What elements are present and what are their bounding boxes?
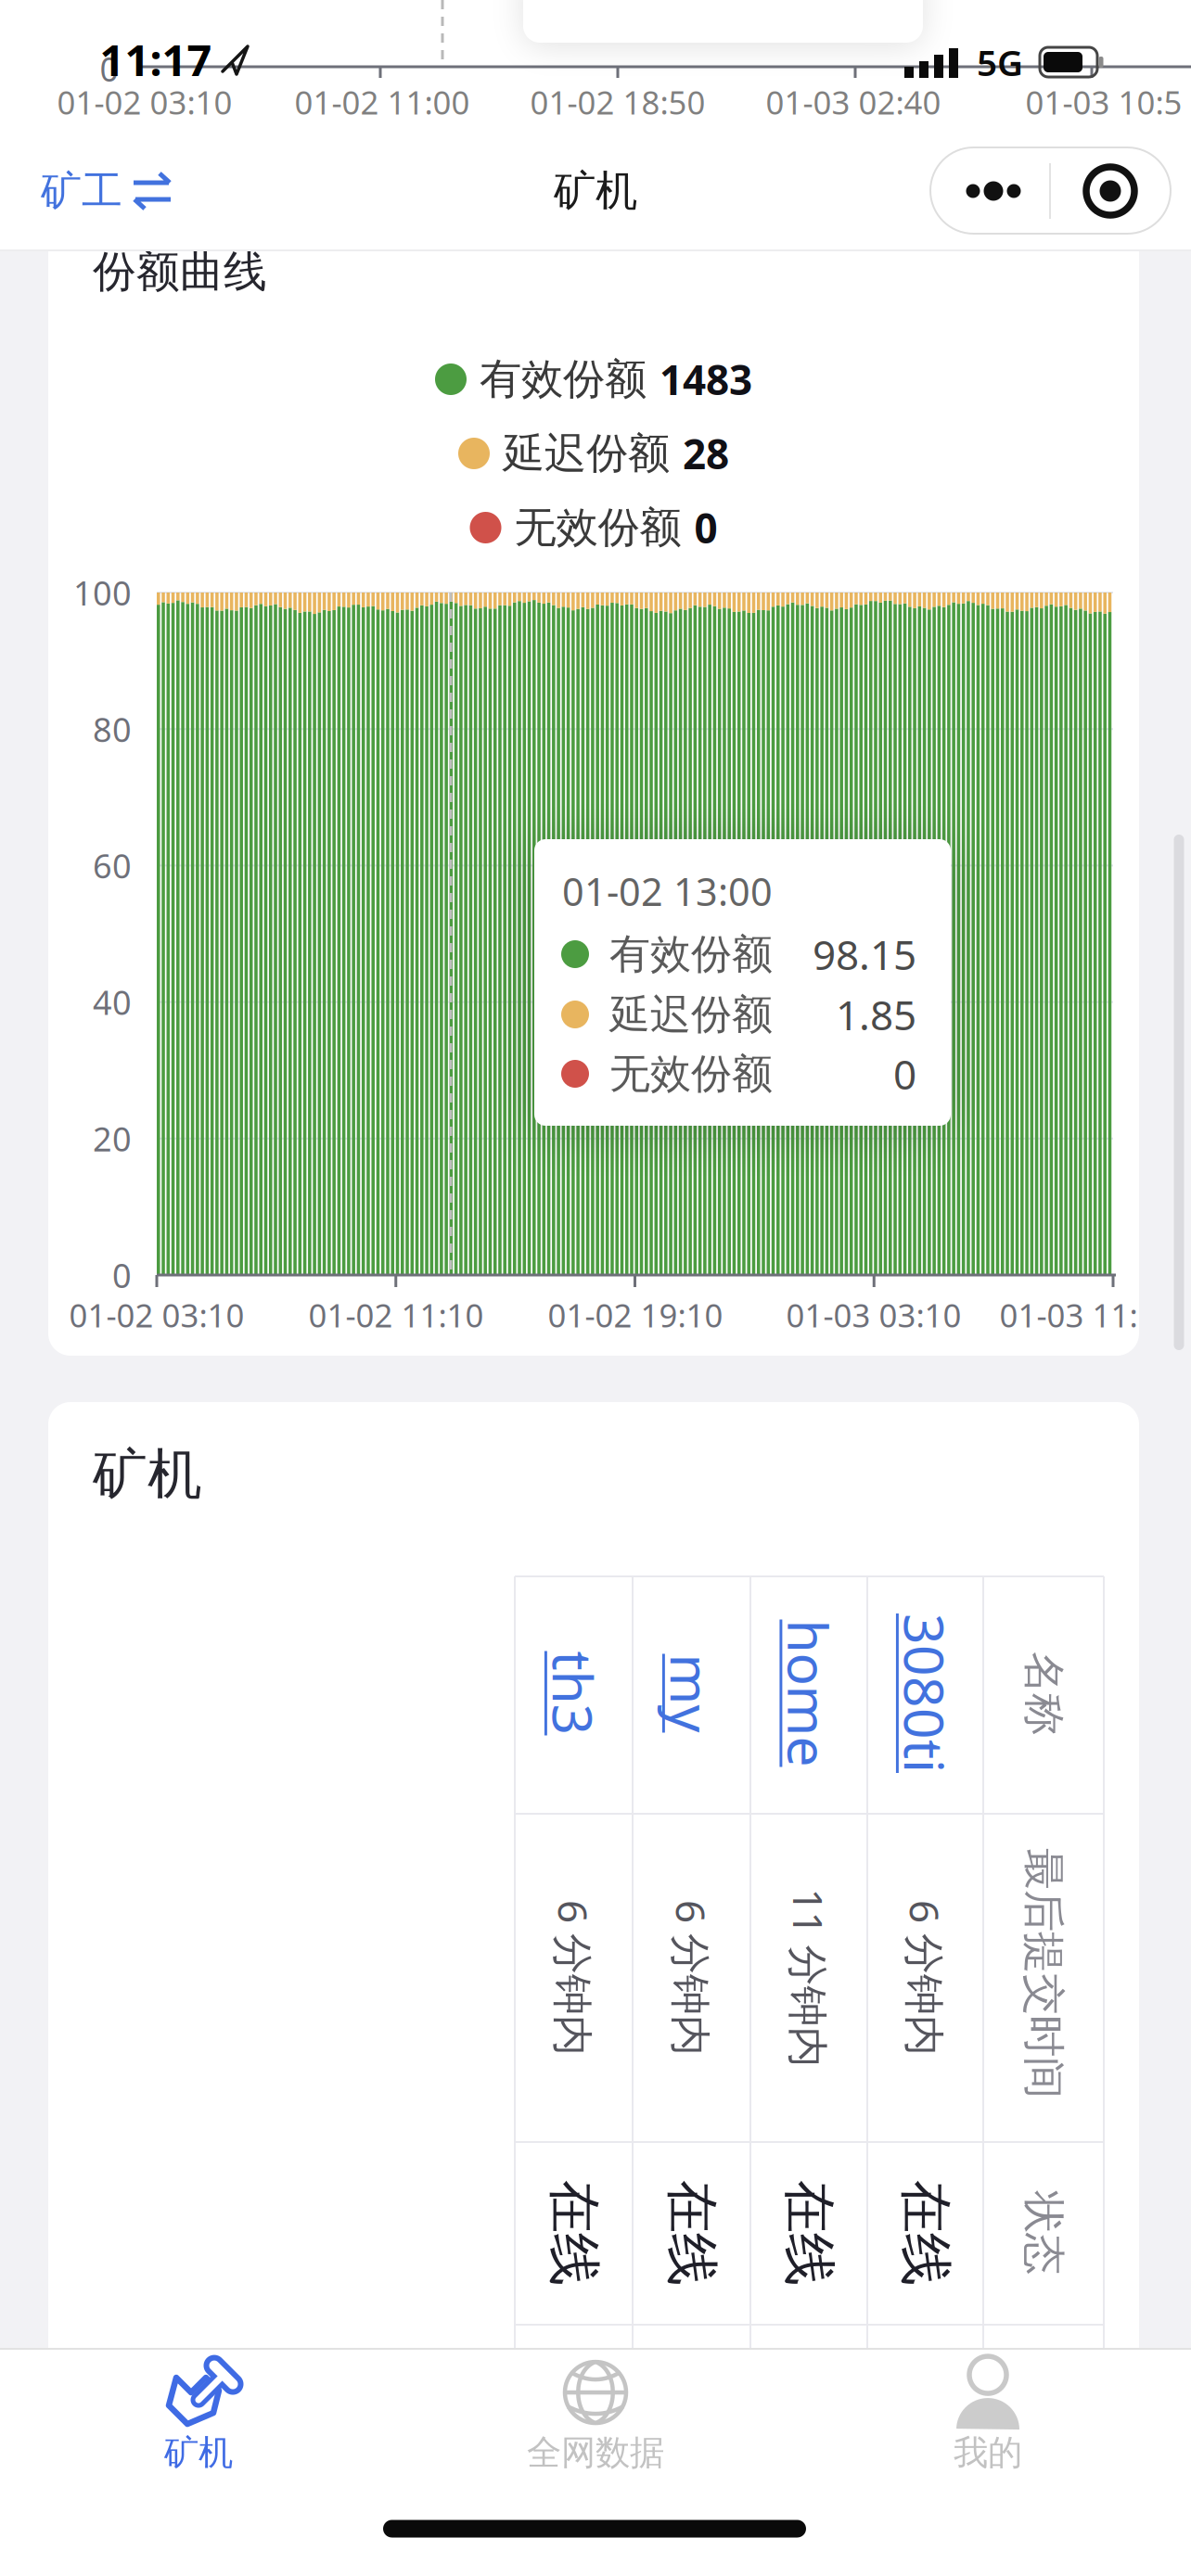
staticText: 有效份额 bbox=[480, 353, 647, 405]
staticText: 0 bbox=[100, 46, 119, 91]
staticText: 01-02 13:00 bbox=[562, 866, 773, 917]
staticText: 无效份额 bbox=[514, 502, 681, 553]
staticText: 延迟份额 bbox=[609, 989, 773, 1039]
staticText: 6 分钟内 bbox=[496, 1951, 652, 2005]
staticText: 状态 bbox=[1002, 2207, 1085, 2259]
staticText: 6 分钟内 bbox=[614, 1951, 769, 2005]
button[interactable]: my bbox=[652, 1657, 731, 1729]
staticText: 矿机 bbox=[164, 2431, 233, 2474]
staticText: 6 分钟内 bbox=[847, 1951, 1003, 2005]
staticText: 98.15 bbox=[813, 927, 916, 981]
staticText: 01-02 03:10 bbox=[69, 1294, 244, 1336]
staticText: 01-02 11:00 bbox=[295, 81, 470, 123]
staticText: 01-03 02:40 bbox=[766, 81, 941, 123]
staticText: 矿机 bbox=[93, 1441, 202, 1508]
staticText: 11 分钟内 bbox=[719, 1951, 898, 2005]
staticText: 1483 bbox=[660, 352, 752, 406]
staticText: 40 bbox=[93, 980, 132, 1024]
staticText: 01-02 03:10 bbox=[57, 81, 232, 123]
staticText: 在线 bbox=[756, 2200, 862, 2266]
staticText: 1.85 bbox=[836, 987, 916, 1042]
staticText: 01-02 18:50 bbox=[530, 81, 705, 123]
staticText: 矿机 bbox=[554, 165, 637, 217]
staticText: 份额曲线 bbox=[93, 245, 267, 298]
staticText: 我的 bbox=[954, 2431, 1022, 2474]
staticText: 0 bbox=[893, 1047, 916, 1101]
staticText: 01-03 10:5 bbox=[1025, 81, 1182, 123]
staticText: 01-03 11: bbox=[999, 1294, 1138, 1336]
button[interactable]: 延迟份额 bbox=[458, 426, 729, 481]
staticText: 80 bbox=[93, 707, 132, 751]
staticText: 20 bbox=[93, 1116, 132, 1161]
button[interactable]: 矿工 bbox=[41, 166, 171, 216]
staticText: 矿工 bbox=[41, 166, 122, 216]
staticText: home bbox=[735, 1657, 883, 1729]
button[interactable]: home bbox=[735, 1657, 883, 1729]
staticText: 在线 bbox=[872, 2200, 978, 2266]
staticText: 60 bbox=[93, 843, 132, 888]
staticText: 01-02 11:10 bbox=[308, 1294, 484, 1336]
staticText: 延迟份额 bbox=[503, 428, 670, 479]
button[interactable]: 有效份额 bbox=[435, 352, 752, 406]
button[interactable]: 我的 bbox=[951, 2355, 1025, 2474]
button[interactable]: 无效份额 bbox=[470, 501, 717, 555]
button[interactable]: th3 bbox=[531, 1657, 616, 1729]
staticText: 11:17 bbox=[100, 31, 212, 88]
staticText: 在线 bbox=[639, 2200, 744, 2266]
staticText: 最后提交时间 bbox=[918, 1947, 1169, 1999]
staticText: 01-02 19:10 bbox=[548, 1294, 723, 1336]
staticText: 5G bbox=[977, 38, 1023, 86]
staticText: 100 bbox=[73, 570, 132, 615]
staticText: 0 bbox=[112, 1253, 132, 1297]
staticText: 在线 bbox=[521, 2200, 627, 2266]
staticText: 有效份额 bbox=[609, 929, 773, 979]
staticText: 无效份额 bbox=[609, 1049, 773, 1099]
staticText: 01-03 03:10 bbox=[786, 1294, 961, 1336]
button[interactable]: 3080ti bbox=[845, 1657, 1005, 1729]
staticText: 3080ti bbox=[845, 1657, 1005, 1729]
button[interactable]: 全网数据 bbox=[527, 2355, 664, 2474]
staticText: 全网数据 bbox=[527, 2431, 664, 2474]
button[interactable] bbox=[0, 0, 1191, 2576]
staticText: th3 bbox=[531, 1657, 616, 1729]
staticText: 名称 bbox=[1002, 1667, 1085, 1719]
button[interactable]: 矿机 bbox=[161, 2355, 236, 2474]
staticText: 28 bbox=[683, 426, 729, 481]
staticText: 0 bbox=[694, 501, 717, 555]
staticText: my bbox=[652, 1657, 731, 1729]
